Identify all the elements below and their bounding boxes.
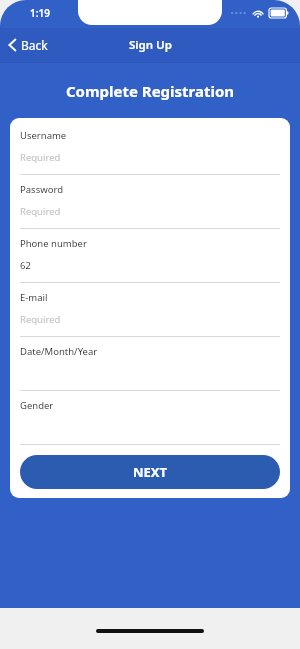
- staticText: Required: [20, 313, 61, 326]
- staticText: Username: [20, 129, 67, 142]
- staticText: Password: [20, 183, 63, 196]
- staticText: 62: [20, 259, 31, 272]
- staticText: Gender: [20, 399, 54, 412]
- staticText: Back: [21, 37, 48, 53]
- staticText: Sign Up: [129, 37, 172, 53]
- staticText: 1:19: [30, 6, 50, 20]
- button[interactable]: Password: [20, 175, 280, 229]
- button[interactable]: Back: [0, 33, 58, 57]
- button[interactable]: NEXT: [20, 455, 280, 489]
- button[interactable]: Phone number: [20, 229, 280, 283]
- staticText: Required: [20, 151, 61, 164]
- staticText: Complete Registration: [0, 81, 300, 101]
- staticText: E-mail: [20, 291, 48, 304]
- staticText: Date/Month/Year: [20, 345, 98, 358]
- button[interactable]: Username: [20, 121, 280, 175]
- button[interactable]: Gender: [20, 391, 280, 445]
- staticText: Required: [20, 205, 61, 218]
- button[interactable]: E-mail: [20, 283, 280, 337]
- staticText: NEXT: [133, 463, 168, 481]
- staticText: Phone number: [20, 237, 87, 250]
- button[interactable]: Date/Month/Year: [20, 337, 280, 391]
